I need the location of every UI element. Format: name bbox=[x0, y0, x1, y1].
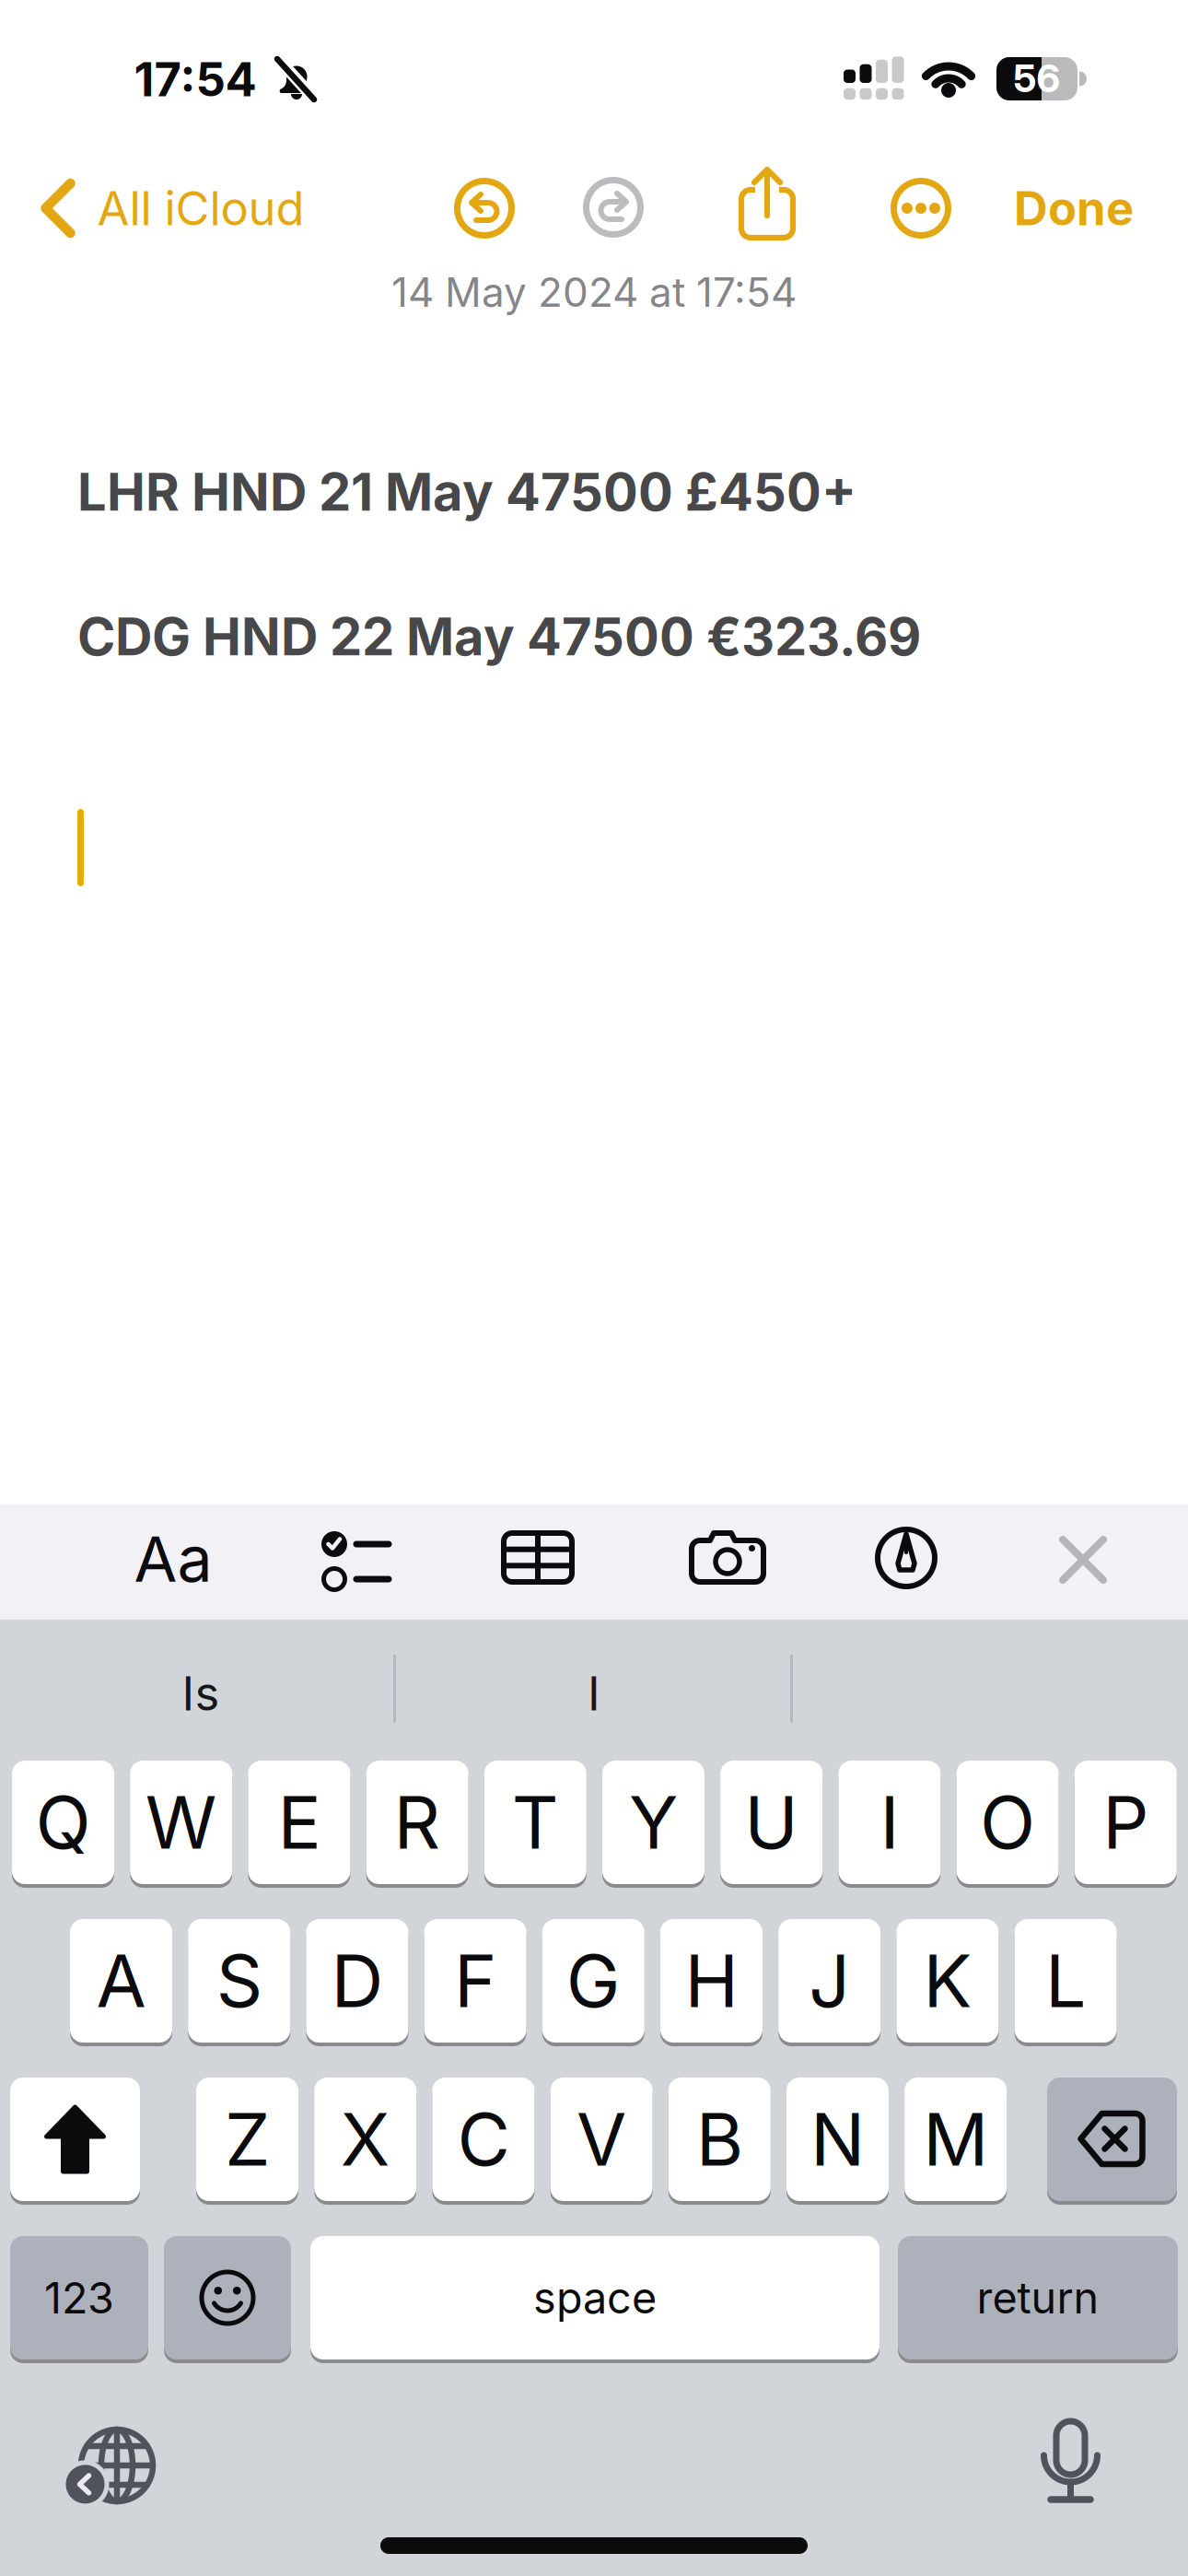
staticText: O bbox=[980, 1780, 1035, 1865]
button[interactable]: Emoji bbox=[164, 2234, 291, 2361]
staticText: 123 bbox=[44, 2272, 114, 2323]
button[interactable]: Z bbox=[196, 2076, 298, 2203]
button[interactable]: E bbox=[248, 1759, 350, 1886]
staticText: R bbox=[394, 1780, 441, 1865]
button[interactable]: Back bbox=[40, 179, 304, 238]
button[interactable]: Redo bbox=[580, 174, 646, 240]
button[interactable]: H bbox=[660, 1917, 763, 2044]
button[interactable]: A bbox=[70, 1917, 172, 2044]
button[interactable]: Y bbox=[602, 1759, 705, 1886]
staticText: P bbox=[1103, 1780, 1149, 1865]
staticText: D bbox=[331, 1938, 383, 2024]
button[interactable]: Markup bbox=[873, 1525, 939, 1591]
staticText: 56 bbox=[1013, 56, 1060, 101]
button[interactable]: Undo bbox=[451, 175, 518, 241]
button[interactable]: L bbox=[1014, 1917, 1117, 2044]
button[interactable]: R bbox=[366, 1759, 468, 1886]
staticText: Y bbox=[629, 1780, 678, 1865]
staticText: V bbox=[577, 2097, 626, 2182]
button[interactable]: P bbox=[1075, 1759, 1177, 1886]
staticText: Is bbox=[182, 1666, 220, 1721]
button[interactable]: N bbox=[786, 2076, 889, 2203]
staticText: E bbox=[278, 1780, 321, 1865]
staticText: K bbox=[923, 1938, 972, 2024]
staticText: W bbox=[145, 1780, 217, 1865]
button[interactable]: Format bbox=[134, 1522, 212, 1596]
button[interactable]: Is bbox=[26, 1645, 376, 1741]
button[interactable]: Q bbox=[12, 1759, 114, 1886]
button[interactable]: I bbox=[838, 1759, 941, 1886]
button[interactable]: Checklist bbox=[321, 1531, 391, 1592]
staticText: Aa bbox=[134, 1522, 212, 1596]
button[interactable]: D bbox=[306, 1917, 408, 2044]
button[interactable]: K bbox=[896, 1917, 999, 2044]
button[interactable]: Dismiss keyboard bbox=[1058, 1535, 1108, 1585]
button[interactable]: Done bbox=[1014, 181, 1134, 236]
staticText: G bbox=[566, 1938, 621, 2024]
staticText: N bbox=[810, 2097, 865, 2182]
button[interactable]: More bbox=[888, 175, 954, 241]
staticText: L bbox=[1045, 1938, 1086, 2024]
button[interactable]: Dictate bbox=[1029, 2415, 1113, 2507]
staticText: I bbox=[880, 1780, 899, 1865]
staticText: J bbox=[809, 1938, 850, 2024]
button[interactable]: W bbox=[130, 1759, 232, 1886]
staticText: A bbox=[96, 1938, 146, 2024]
staticText: T bbox=[512, 1780, 559, 1865]
staticText: B bbox=[696, 2097, 743, 2182]
staticText: LHR HND 21 May 47500 £450+ bbox=[77, 462, 856, 522]
button[interactable]: Share bbox=[740, 157, 797, 241]
button[interactable]: M bbox=[905, 2076, 1007, 2203]
staticText: C bbox=[457, 2097, 510, 2182]
button[interactable]: Delete bbox=[1047, 2076, 1177, 2203]
button[interactable]: T bbox=[484, 1759, 586, 1886]
staticText: F bbox=[454, 1938, 496, 2024]
staticText: M bbox=[923, 2097, 988, 2182]
button[interactable]: I bbox=[419, 1645, 769, 1741]
staticText: All iCloud bbox=[97, 181, 304, 236]
button[interactable]: U bbox=[720, 1759, 823, 1886]
button[interactable]: J bbox=[778, 1917, 881, 2044]
staticText: H bbox=[685, 1938, 738, 2024]
staticText: space bbox=[533, 2272, 657, 2323]
staticText: Done bbox=[1014, 181, 1134, 236]
button[interactable]: 123 bbox=[10, 2234, 148, 2361]
button[interactable]: return bbox=[898, 2234, 1178, 2361]
staticText: CDG HND 22 May 47500 €323.69 bbox=[77, 606, 921, 667]
button[interactable]: O bbox=[956, 1759, 1059, 1886]
staticText: 17:54 bbox=[134, 52, 256, 107]
button[interactable]: V bbox=[550, 2076, 653, 2203]
staticText: I bbox=[588, 1666, 600, 1721]
button[interactable]: Next keyboard bbox=[71, 2419, 163, 2512]
button[interactable]: Shift bbox=[10, 2076, 140, 2203]
button[interactable]: X bbox=[314, 2076, 416, 2203]
staticText: 14 May 2024 at 17:54 bbox=[391, 268, 797, 316]
button[interactable]: space bbox=[310, 2234, 879, 2361]
button[interactable]: Table bbox=[504, 1533, 574, 1585]
staticText: S bbox=[216, 1938, 262, 2024]
button[interactable]: Camera bbox=[692, 1529, 763, 1585]
staticText: X bbox=[340, 2097, 390, 2182]
staticText: Q bbox=[35, 1780, 91, 1865]
button[interactable]: F bbox=[424, 1917, 526, 2044]
button[interactable]: G bbox=[542, 1917, 644, 2044]
staticText: return bbox=[977, 2272, 1099, 2323]
staticText: U bbox=[744, 1780, 799, 1865]
staticText: Z bbox=[225, 2097, 270, 2182]
button[interactable]: C bbox=[432, 2076, 535, 2203]
button[interactable]: S bbox=[188, 1917, 290, 2044]
button[interactable]: B bbox=[668, 2076, 771, 2203]
